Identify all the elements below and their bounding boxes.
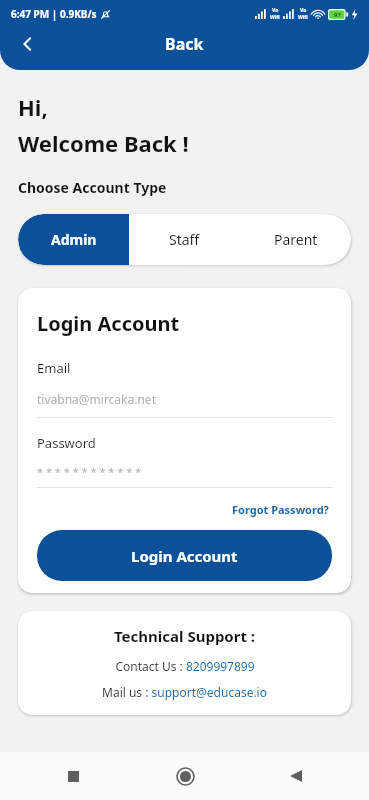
staticText: * * * * * * * * * * * * (37, 464, 142, 479)
button[interactable]: Staff (129, 214, 240, 265)
button[interactable]: Forgot Password? (229, 499, 332, 520)
staticText: Vo (272, 7, 279, 14)
staticText: Admin (51, 230, 97, 249)
staticText: Hi, (18, 92, 48, 122)
button[interactable]: * * * * * * * * * * * * (37, 464, 332, 479)
staticText: Technical Support : (114, 626, 256, 646)
staticText: Mail us : support@educase.io (102, 684, 267, 700)
staticText: Welcome Back ! (18, 128, 189, 158)
staticText: Password (37, 434, 96, 452)
staticText: Forgot Password? (232, 502, 329, 517)
staticText: Choose Account Type (18, 178, 167, 197)
staticText: tivabna@mircaka.net (37, 391, 156, 407)
button[interactable]: Parent (240, 214, 351, 265)
staticText: Wifi (298, 14, 308, 21)
button[interactable]: Login Account (37, 530, 332, 581)
button[interactable]: Contact Us : 8209997899 (115, 658, 255, 674)
staticText: Login Account (37, 310, 180, 337)
staticText: 6:47 PM | 0.9KB/s (11, 7, 97, 21)
staticText: Vo (300, 7, 307, 14)
button[interactable]: Mail us : support@educase.io (102, 684, 267, 700)
staticText: Email (37, 359, 71, 377)
staticText: Contact Us : 8209997899 (115, 658, 255, 674)
staticText: Wifi (270, 14, 280, 21)
staticText: Login Account (131, 546, 238, 566)
staticText: 97 (334, 11, 341, 19)
staticText: Staff (169, 230, 200, 249)
button[interactable]: Back (279, 759, 313, 793)
staticText: Parent (274, 230, 318, 249)
button[interactable]: tivabna@mircaka.net (37, 391, 332, 407)
button[interactable]: Back (8, 24, 48, 64)
staticText: Back (165, 33, 204, 55)
button[interactable]: Admin (18, 214, 129, 265)
button[interactable]: Home (168, 759, 202, 793)
button[interactable]: Recents (56, 759, 90, 793)
